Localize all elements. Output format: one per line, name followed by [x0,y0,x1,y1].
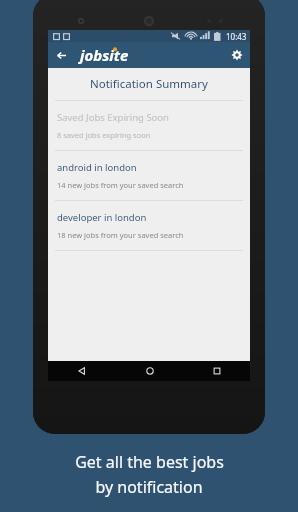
staticText: jobsite [80,45,129,65]
staticText: by notification [95,476,203,498]
staticText: 8 saved jobs expiring soon [57,130,151,140]
button[interactable]: Back [48,361,116,381]
staticText: android in london [57,161,137,174]
button[interactable]: Settings [224,42,250,68]
staticText: Saved Jobs Expiring Soon [57,111,169,124]
staticText: Get all the best jobs [75,451,224,473]
staticText: developer in london [57,211,147,224]
button[interactable]: Saved Jobs Expiring Soon [48,101,250,150]
button[interactable]: Home [116,361,183,381]
staticText: 10:43 [226,31,247,42]
staticText: 14 new jobs from your saved search [57,180,184,190]
staticText: Notification Summary [90,76,208,92]
button[interactable]: Back [48,42,74,68]
button[interactable]: developer in london [48,201,250,250]
button[interactable]: android in london [48,151,250,200]
button[interactable]: Recents [183,361,250,381]
staticText: 18 new jobs from your saved search [57,230,184,240]
